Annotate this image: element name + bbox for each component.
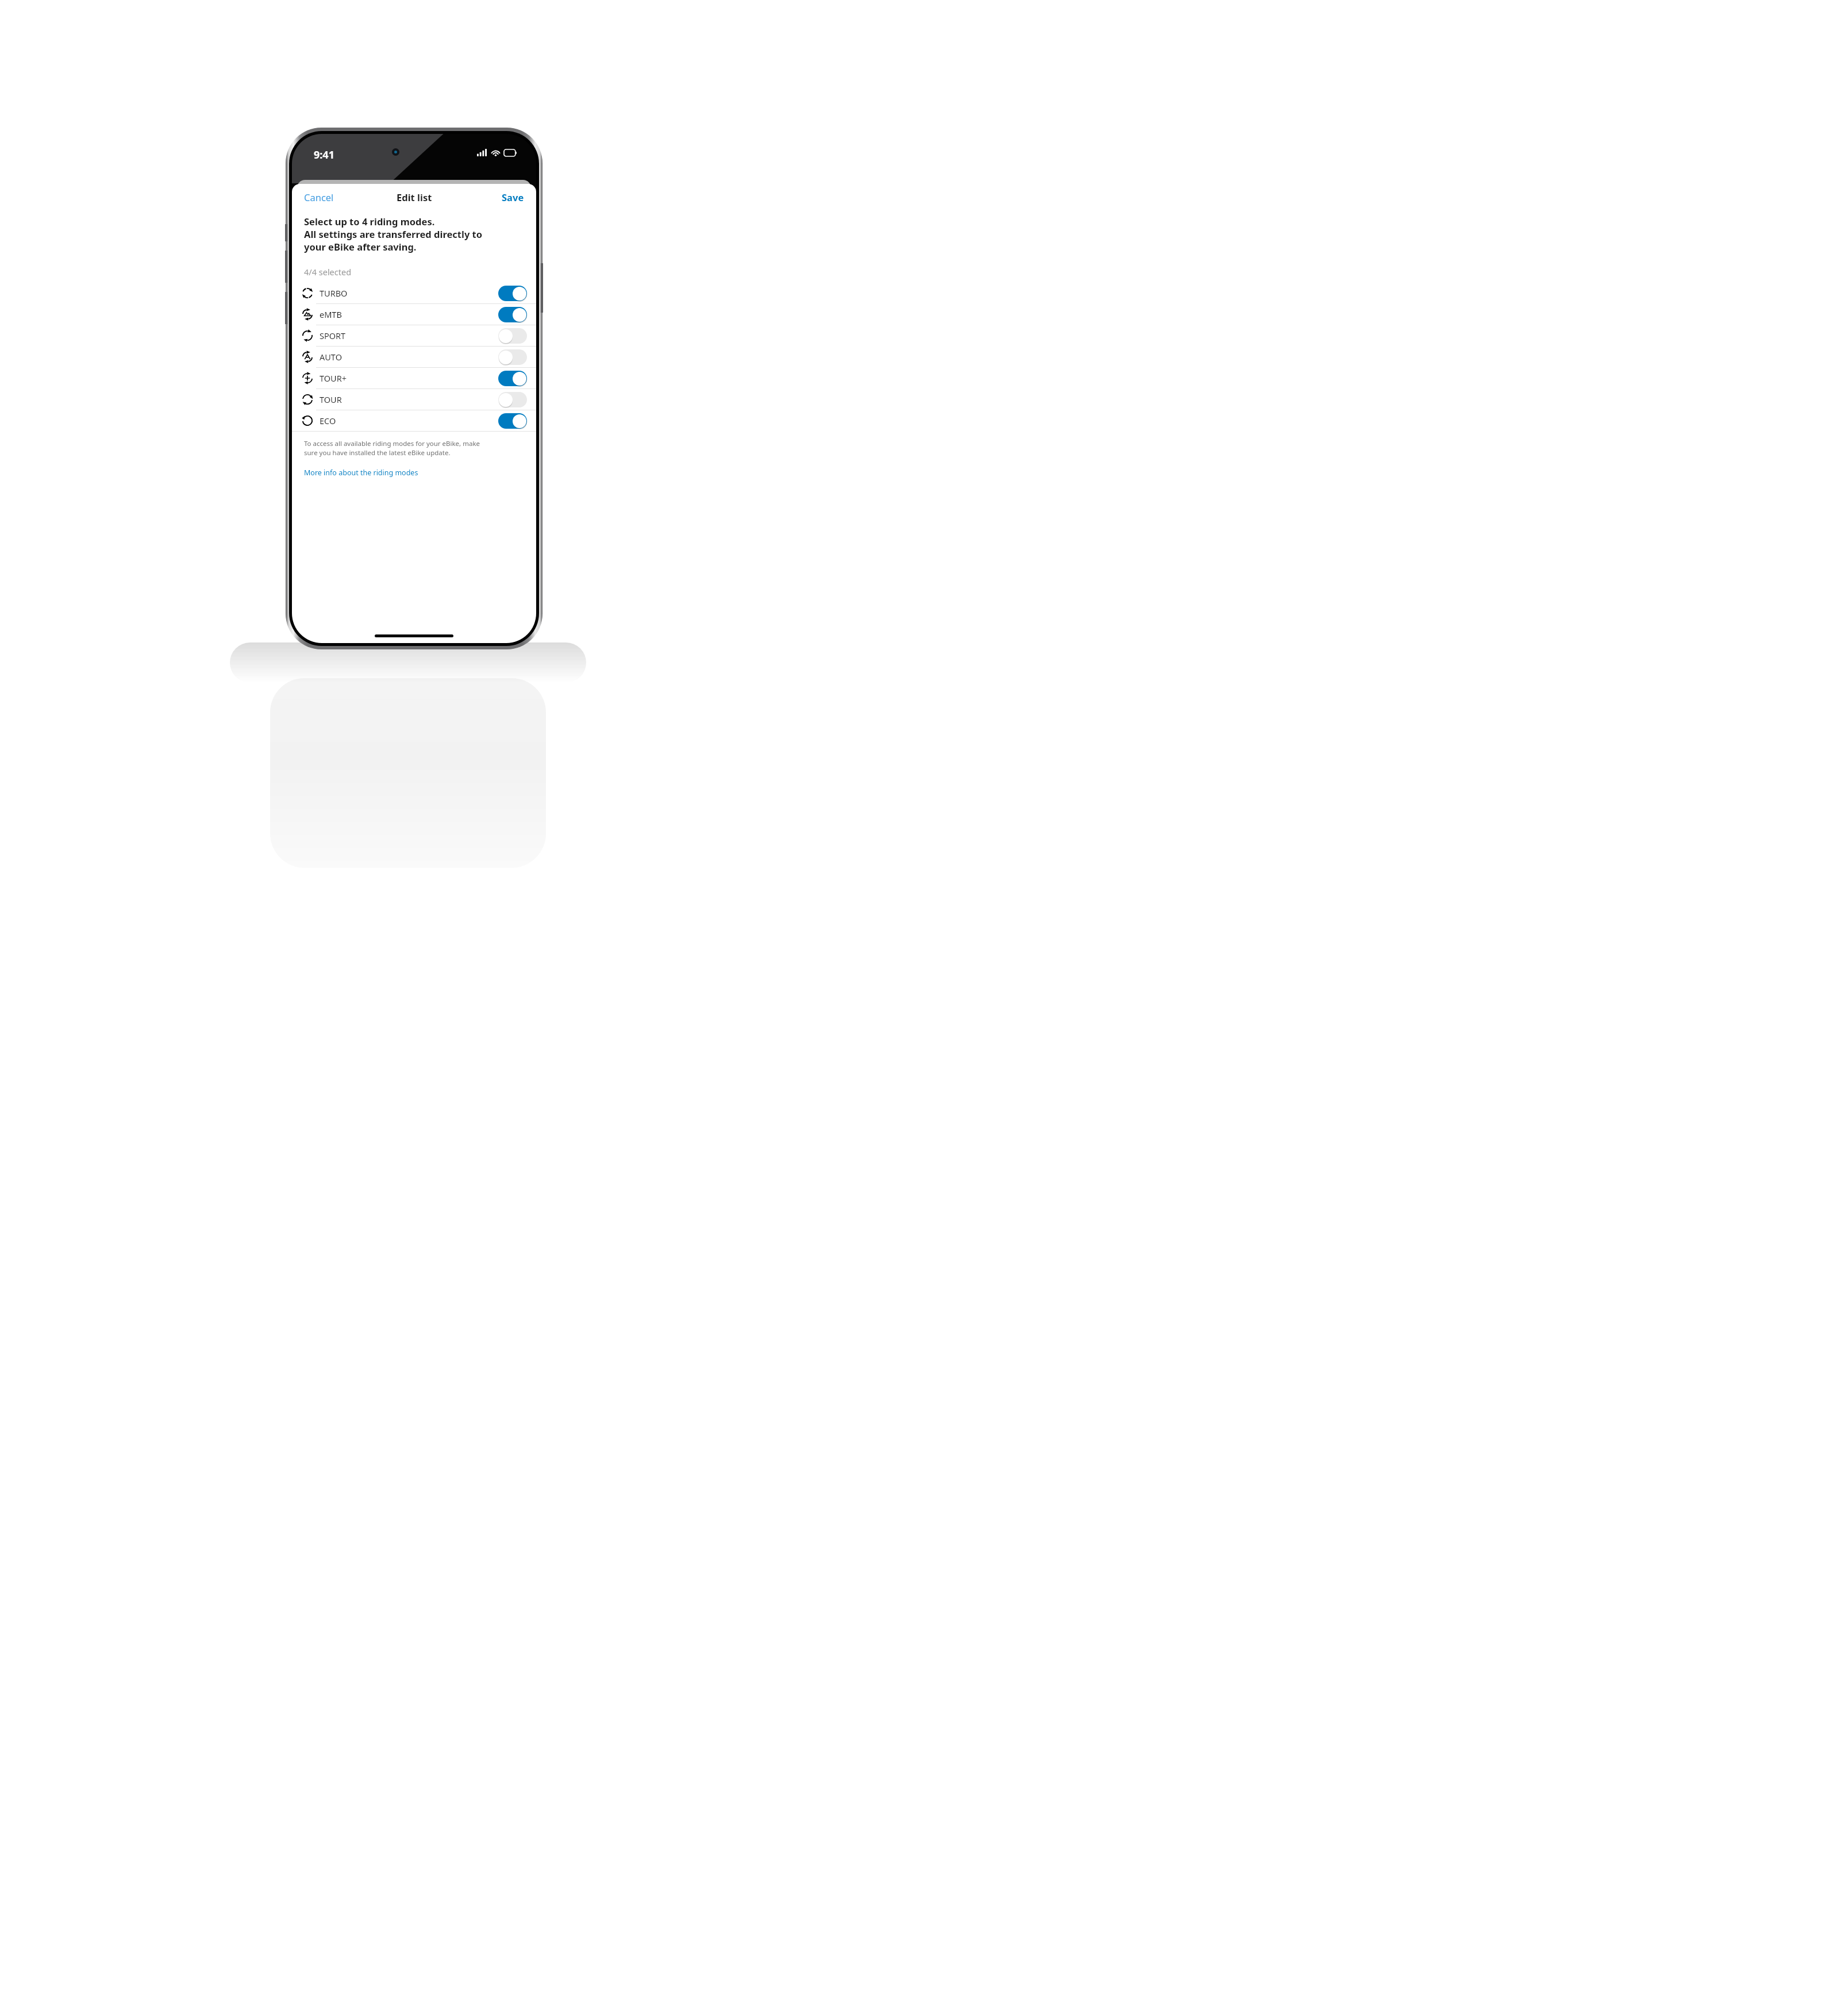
staticText: TOUR — [320, 394, 342, 405]
staticText: TOUR+ — [320, 372, 347, 384]
button[interactable]: TURBO — [292, 283, 536, 303]
button[interactable]: TOUR — [292, 389, 536, 410]
button[interactable]: AUTO — [292, 347, 536, 367]
staticText: SPORT — [320, 330, 346, 341]
button[interactable]: SPORT — [292, 325, 536, 346]
staticText: AUTO — [320, 351, 342, 363]
button[interactable]: eMTB enabled — [498, 307, 527, 322]
staticText: eMTB — [320, 309, 342, 320]
button[interactable]: TOUR disabled — [498, 392, 527, 407]
staticText: TURBO — [320, 287, 348, 299]
button[interactable]: More info about the riding modes — [292, 467, 430, 480]
staticText: Save — [502, 191, 524, 203]
staticText: All settings are transferred directly to — [304, 228, 483, 240]
staticText: your eBike after saving. — [304, 240, 417, 253]
button[interactable]: ECO — [292, 410, 536, 431]
button[interactable]: TURBO enabled — [498, 286, 527, 301]
staticText: Select up to 4 riding modes. — [304, 215, 435, 228]
staticText: ECO — [320, 415, 336, 426]
button[interactable]: eMTB — [292, 304, 536, 325]
button[interactable]: SPORT disabled — [498, 328, 527, 344]
staticText: Edit list — [397, 191, 432, 203]
button[interactable]: AUTO disabled — [498, 349, 527, 365]
staticText: More info about the riding modes — [304, 468, 418, 478]
staticText: 9:41 — [314, 148, 334, 162]
button[interactable]: ECO enabled — [498, 413, 527, 429]
button[interactable]: Save — [490, 186, 536, 208]
staticText: sure you have installed the latest eBike… — [304, 448, 451, 457]
button[interactable]: Cancel — [292, 186, 346, 208]
staticText: To access all available riding modes for… — [304, 439, 480, 448]
staticText: Cancel — [304, 191, 334, 203]
staticText: 4/4 selected — [304, 266, 352, 278]
button[interactable]: TOUR+ enabled — [498, 371, 527, 386]
button[interactable]: TOUR+ — [292, 368, 536, 388]
